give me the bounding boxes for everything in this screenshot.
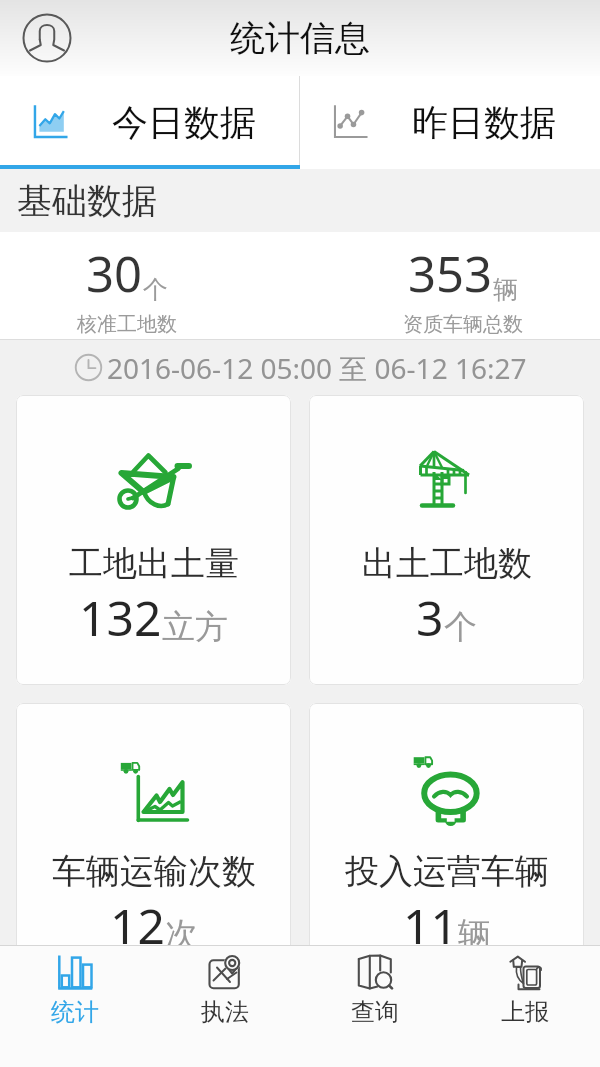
staticText: 统计信息 [230, 16, 370, 60]
button[interactable]: 投入运营车辆 [309, 703, 584, 993]
staticText: 统计 [51, 997, 99, 1027]
button[interactable]: 30 [77, 232, 177, 339]
staticText: 上报 [501, 997, 549, 1027]
staticText: 基础数据 [17, 179, 157, 223]
button[interactable]: 今日数据 [0, 76, 299, 169]
staticText: 立方 [162, 606, 228, 648]
button[interactable]: 执法 [150, 946, 300, 1067]
button[interactable]: 昨日数据 [300, 76, 600, 169]
staticText: 11 [403, 893, 458, 958]
staticText: 2016-06-12 05:00 至 06-12 16:27 [107, 349, 527, 387]
staticText: 个 [444, 606, 477, 648]
staticText: 辆 [458, 914, 491, 956]
staticText: 今日数据 [112, 100, 256, 145]
staticText: 资质车辆总数 [403, 312, 523, 337]
staticText: 个 [143, 274, 168, 305]
staticText: 执法 [201, 997, 249, 1027]
button[interactable]: 查询 [300, 946, 450, 1067]
staticText: 昨日数据 [412, 100, 556, 145]
staticText: 12 [110, 893, 165, 958]
button[interactable]: 工地出土量 [16, 395, 291, 685]
staticText: 辆 [493, 274, 518, 305]
staticText: 132 [79, 585, 162, 650]
staticText: 30 [86, 240, 143, 307]
button[interactable]: Profile [22, 13, 72, 63]
staticText: 3 [416, 585, 444, 650]
button[interactable]: 统计 [0, 946, 150, 1067]
staticText: 353 [408, 240, 493, 307]
staticText: 核准工地数 [77, 312, 177, 337]
staticText: 工地出土量 [69, 542, 239, 585]
staticText: 车辆运输次数 [52, 850, 256, 893]
button[interactable]: 车辆运输次数 [16, 703, 291, 993]
staticText: 次 [165, 914, 198, 956]
staticText: 查询 [351, 997, 399, 1027]
staticText: 投入运营车辆 [345, 850, 549, 893]
button[interactable]: 出土工地数 [309, 395, 584, 685]
button[interactable]: 上报 [450, 946, 600, 1067]
staticText: 出土工地数 [362, 542, 532, 585]
button[interactable]: 353 [403, 232, 523, 339]
